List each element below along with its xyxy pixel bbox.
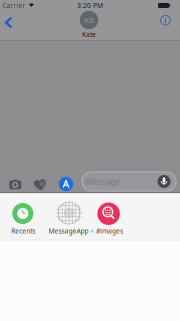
- button[interactable]: KB: [75, 10, 103, 39]
- button[interactable]: Back: [5, 16, 13, 28]
- button[interactable]: MessageApp: [55, 201, 83, 224]
- staticText: Recents: [11, 226, 35, 235]
- button[interactable]: #images: [96, 202, 122, 225]
- button[interactable]: iMessage Apps: [59, 177, 73, 191]
- button[interactable]: iMessage text field: [82, 172, 176, 191]
- staticText: 3:20 PM: [77, 1, 103, 10]
- staticText: #images: [96, 226, 123, 235]
- staticText: iMessage: [84, 176, 120, 187]
- button[interactable]: Recents: [12, 203, 34, 224]
- button[interactable]: Camera: [9, 178, 22, 189]
- staticText: Carrier: [2, 1, 25, 10]
- staticText: MessageApp: [48, 226, 88, 235]
- button[interactable]: Digital Touch: [34, 179, 47, 191]
- staticText: Kate: [82, 30, 96, 39]
- staticText: KB: [84, 15, 94, 25]
- button[interactable]: Details: [160, 15, 171, 26]
